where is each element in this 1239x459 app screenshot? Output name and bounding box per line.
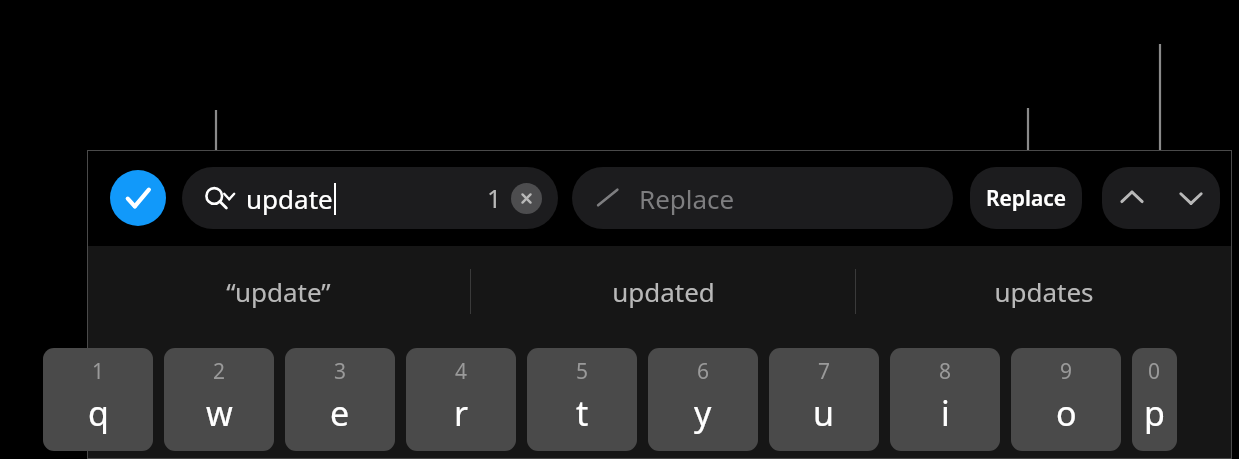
button[interactable]: 6 [648,348,758,451]
staticText: Replace [986,184,1066,213]
staticText: 5 [576,357,589,386]
staticText: Replace [639,181,735,216]
button[interactable]: Done [110,170,166,226]
staticText: 0 [1148,357,1161,386]
staticText: 4 [455,357,468,386]
staticText: q [88,390,109,436]
button[interactable]: 9 [1011,348,1121,451]
button[interactable]: Clear search [511,183,542,214]
staticText: 3 [334,357,347,386]
button[interactable]: update [182,167,558,229]
button[interactable]: 1 [43,348,153,451]
staticText: i [941,390,950,436]
staticText: u [813,390,835,436]
staticText: t [576,390,589,436]
button[interactable]: 8 [890,348,1000,451]
button[interactable]: 3 [285,348,395,451]
staticText: 1 [487,181,502,215]
button[interactable]: 5 [527,348,637,451]
button[interactable]: Next match [1161,167,1220,229]
button[interactable]: 0 [1132,348,1177,451]
staticText: update [246,181,333,216]
button[interactable]: 4 [406,348,516,451]
button[interactable]: Replace [572,167,953,229]
staticText: updates [994,274,1094,309]
staticText: 6 [697,357,710,386]
staticText: p [1144,390,1165,436]
staticText: y [694,390,712,436]
staticText: r [454,390,469,436]
staticText: o [1056,390,1077,436]
staticText: “update” [226,274,331,309]
staticText: 7 [818,357,831,386]
staticText: 1 [92,357,105,386]
button[interactable]: updated [471,246,855,337]
staticText: 9 [1060,357,1073,386]
button[interactable]: 2 [164,348,274,451]
staticText: 2 [213,357,226,386]
button[interactable]: updates [856,246,1232,337]
staticText: updated [612,274,715,309]
staticText: e [330,390,350,436]
staticText: w [206,390,233,436]
button[interactable]: Previous match [1102,167,1161,229]
button[interactable]: Replace [970,167,1082,229]
staticText: 8 [939,357,952,386]
button[interactable]: “update” [87,246,470,337]
button[interactable]: 7 [769,348,879,451]
